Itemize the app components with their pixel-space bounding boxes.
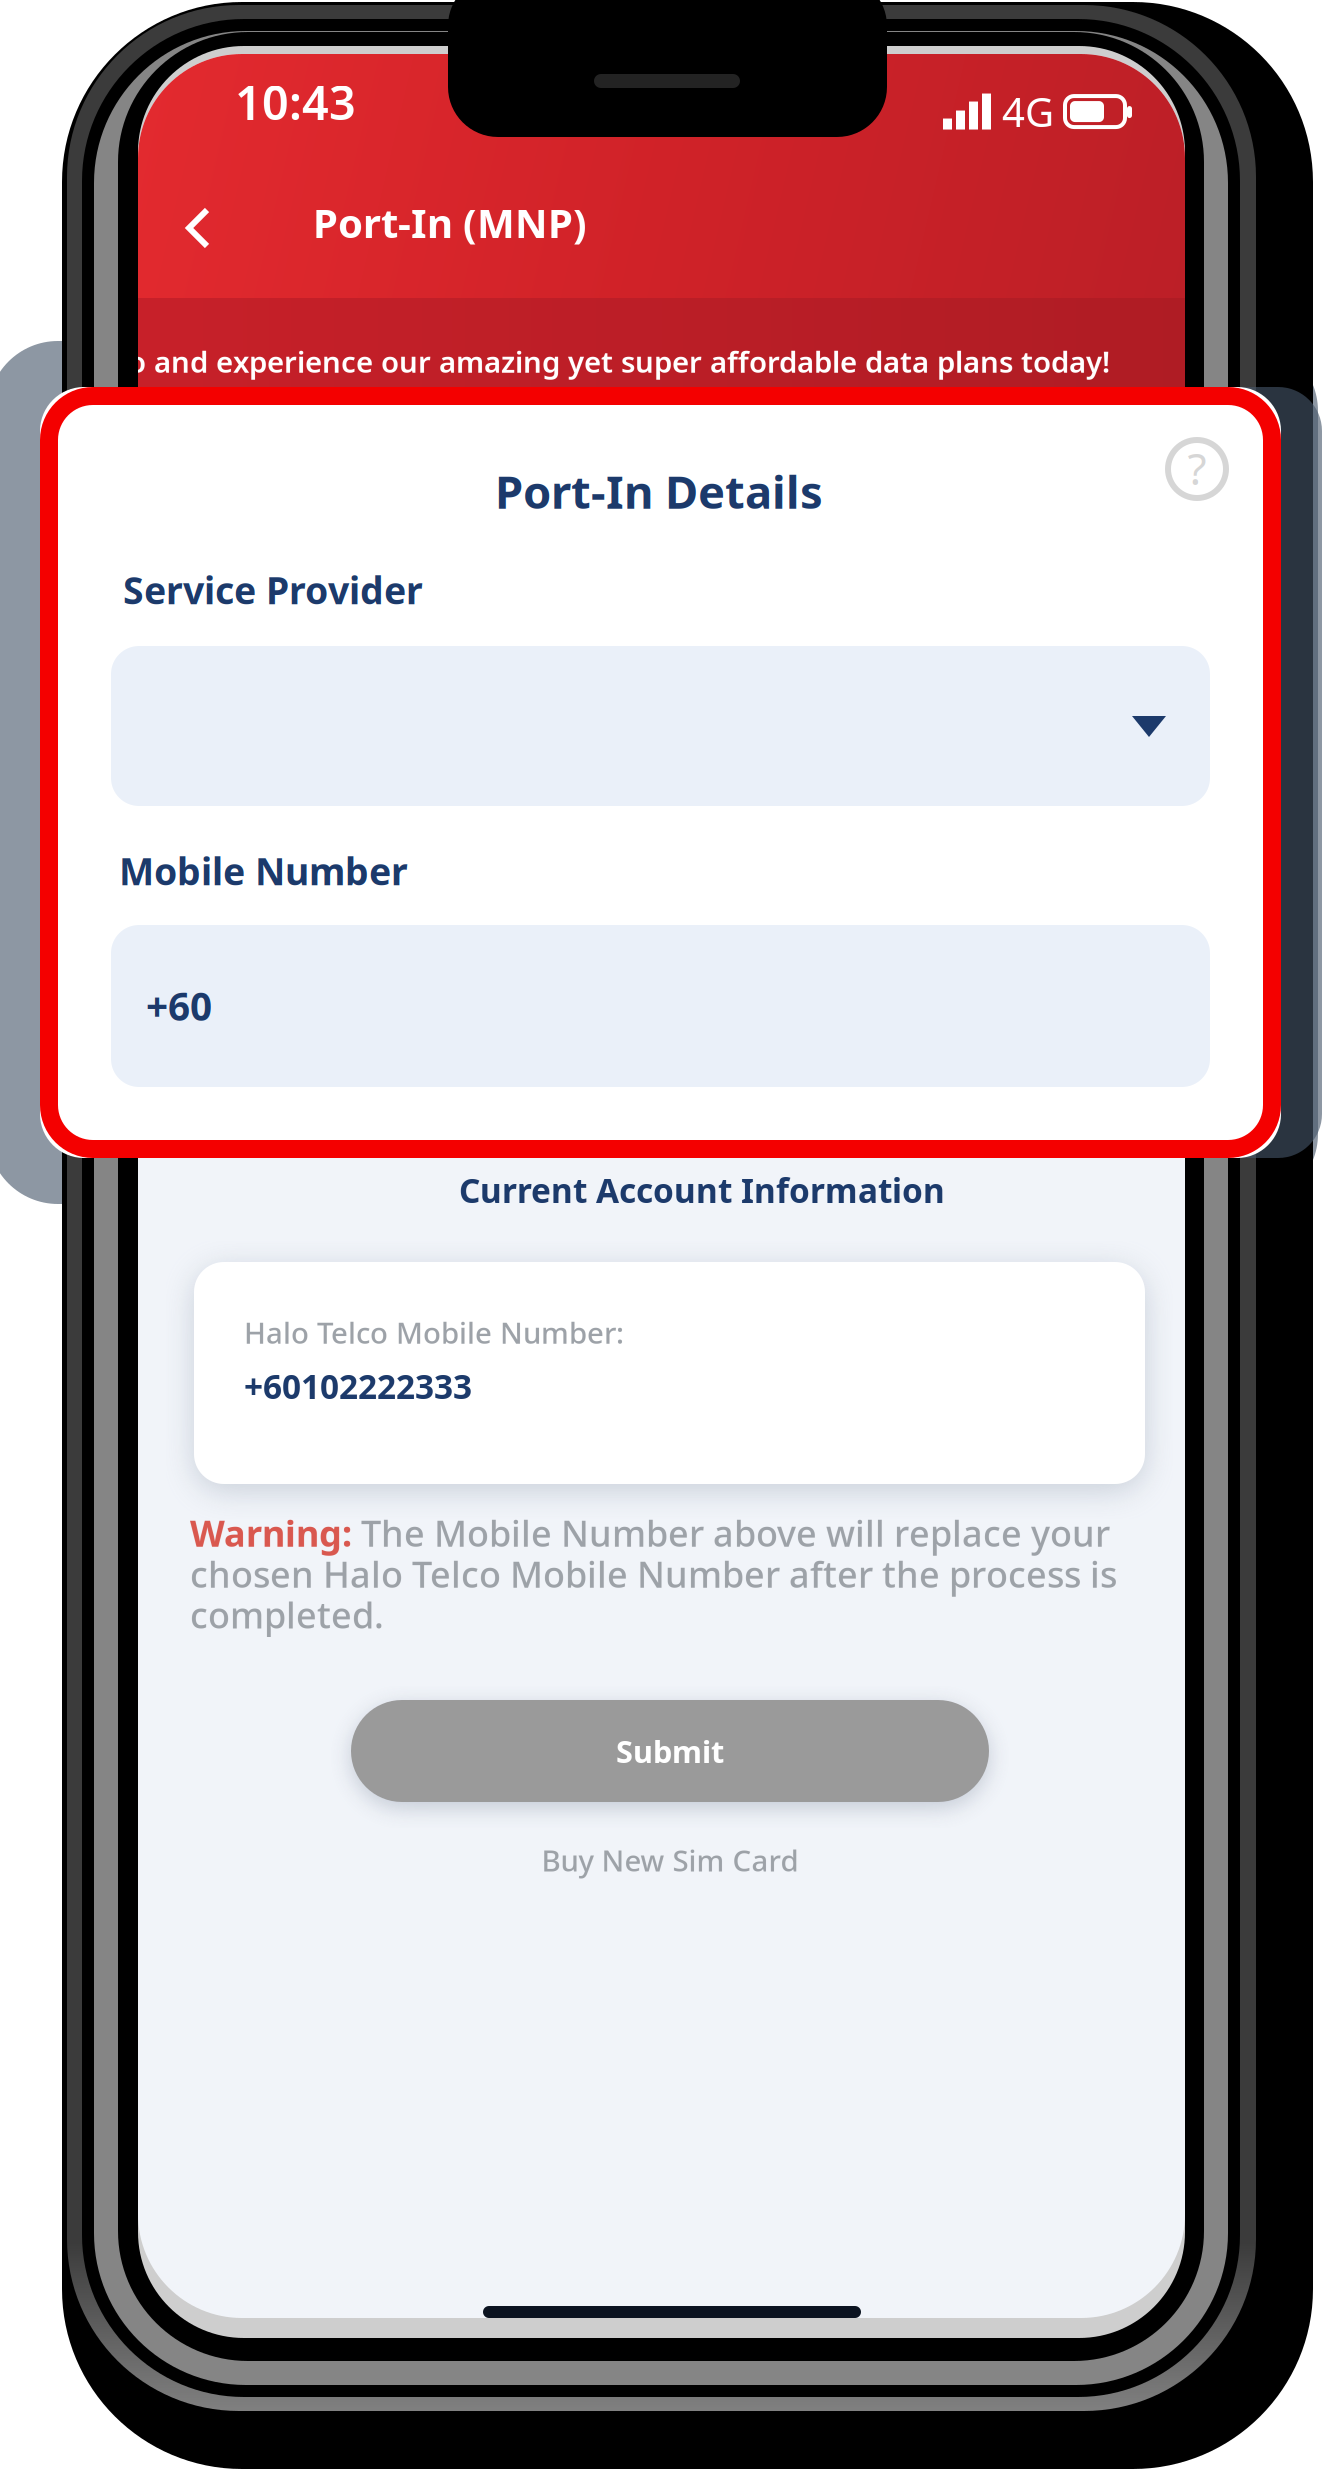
staticText: 4G — [1002, 85, 1054, 138]
staticText: +60102222333 — [244, 1364, 472, 1408]
staticText: S — [1198, 342, 1214, 381]
staticText: The Mobile Number above will replace you… — [352, 1509, 1110, 1557]
staticText: Port-In Details — [495, 461, 823, 521]
staticText: +60 — [146, 980, 212, 1031]
button[interactable]: +60 — [111, 925, 1210, 1087]
staticText: Warning: — [190, 1509, 352, 1557]
button[interactable]: Help — [1165, 437, 1229, 501]
button[interactable] — [111, 646, 1210, 806]
staticText: ? — [1187, 439, 1206, 497]
staticText: completed. — [190, 1591, 384, 1638]
button[interactable]: Buy New Sim Card — [435, 1830, 905, 1890]
staticText: Halo Telco Mobile Number: — [244, 1313, 624, 1352]
staticText: Buy New Sim Card — [541, 1840, 798, 1879]
staticText: co and experience our amazing yet super … — [113, 342, 1110, 381]
button[interactable]: Back — [162, 194, 234, 262]
staticText: Port-In (MNP) — [313, 196, 587, 249]
staticText: chosen Halo Telco Mobile Number after th… — [190, 1550, 1117, 1598]
staticText: Mobile Number — [119, 846, 408, 896]
staticText: Current Account Information — [459, 1168, 945, 1212]
staticText: Service Provider — [123, 565, 423, 615]
staticText: 10:43 — [235, 71, 356, 133]
staticText: Submit — [616, 1731, 724, 1771]
button[interactable]: Submit — [351, 1700, 989, 1802]
